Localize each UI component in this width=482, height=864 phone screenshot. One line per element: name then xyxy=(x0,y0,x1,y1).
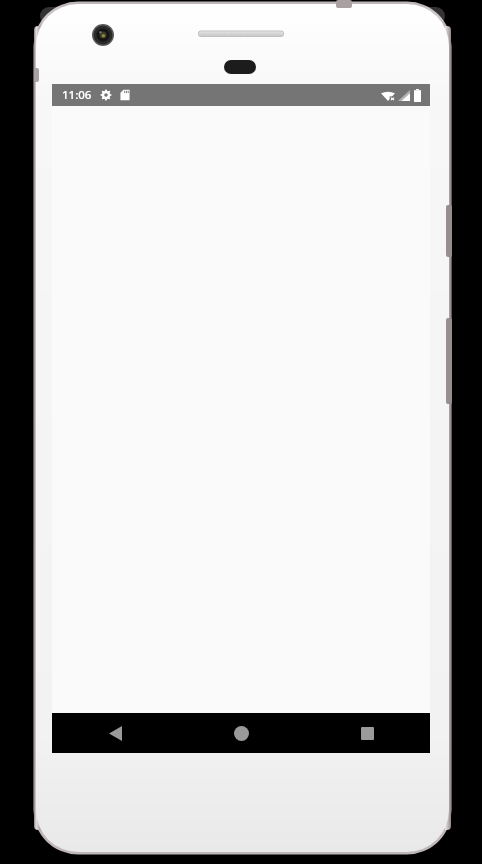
button[interactable]: Home xyxy=(178,713,304,753)
staticText: 11:06 xyxy=(62,87,92,103)
button[interactable]: Recent apps xyxy=(304,713,430,753)
button[interactable]: Back xyxy=(52,713,178,753)
